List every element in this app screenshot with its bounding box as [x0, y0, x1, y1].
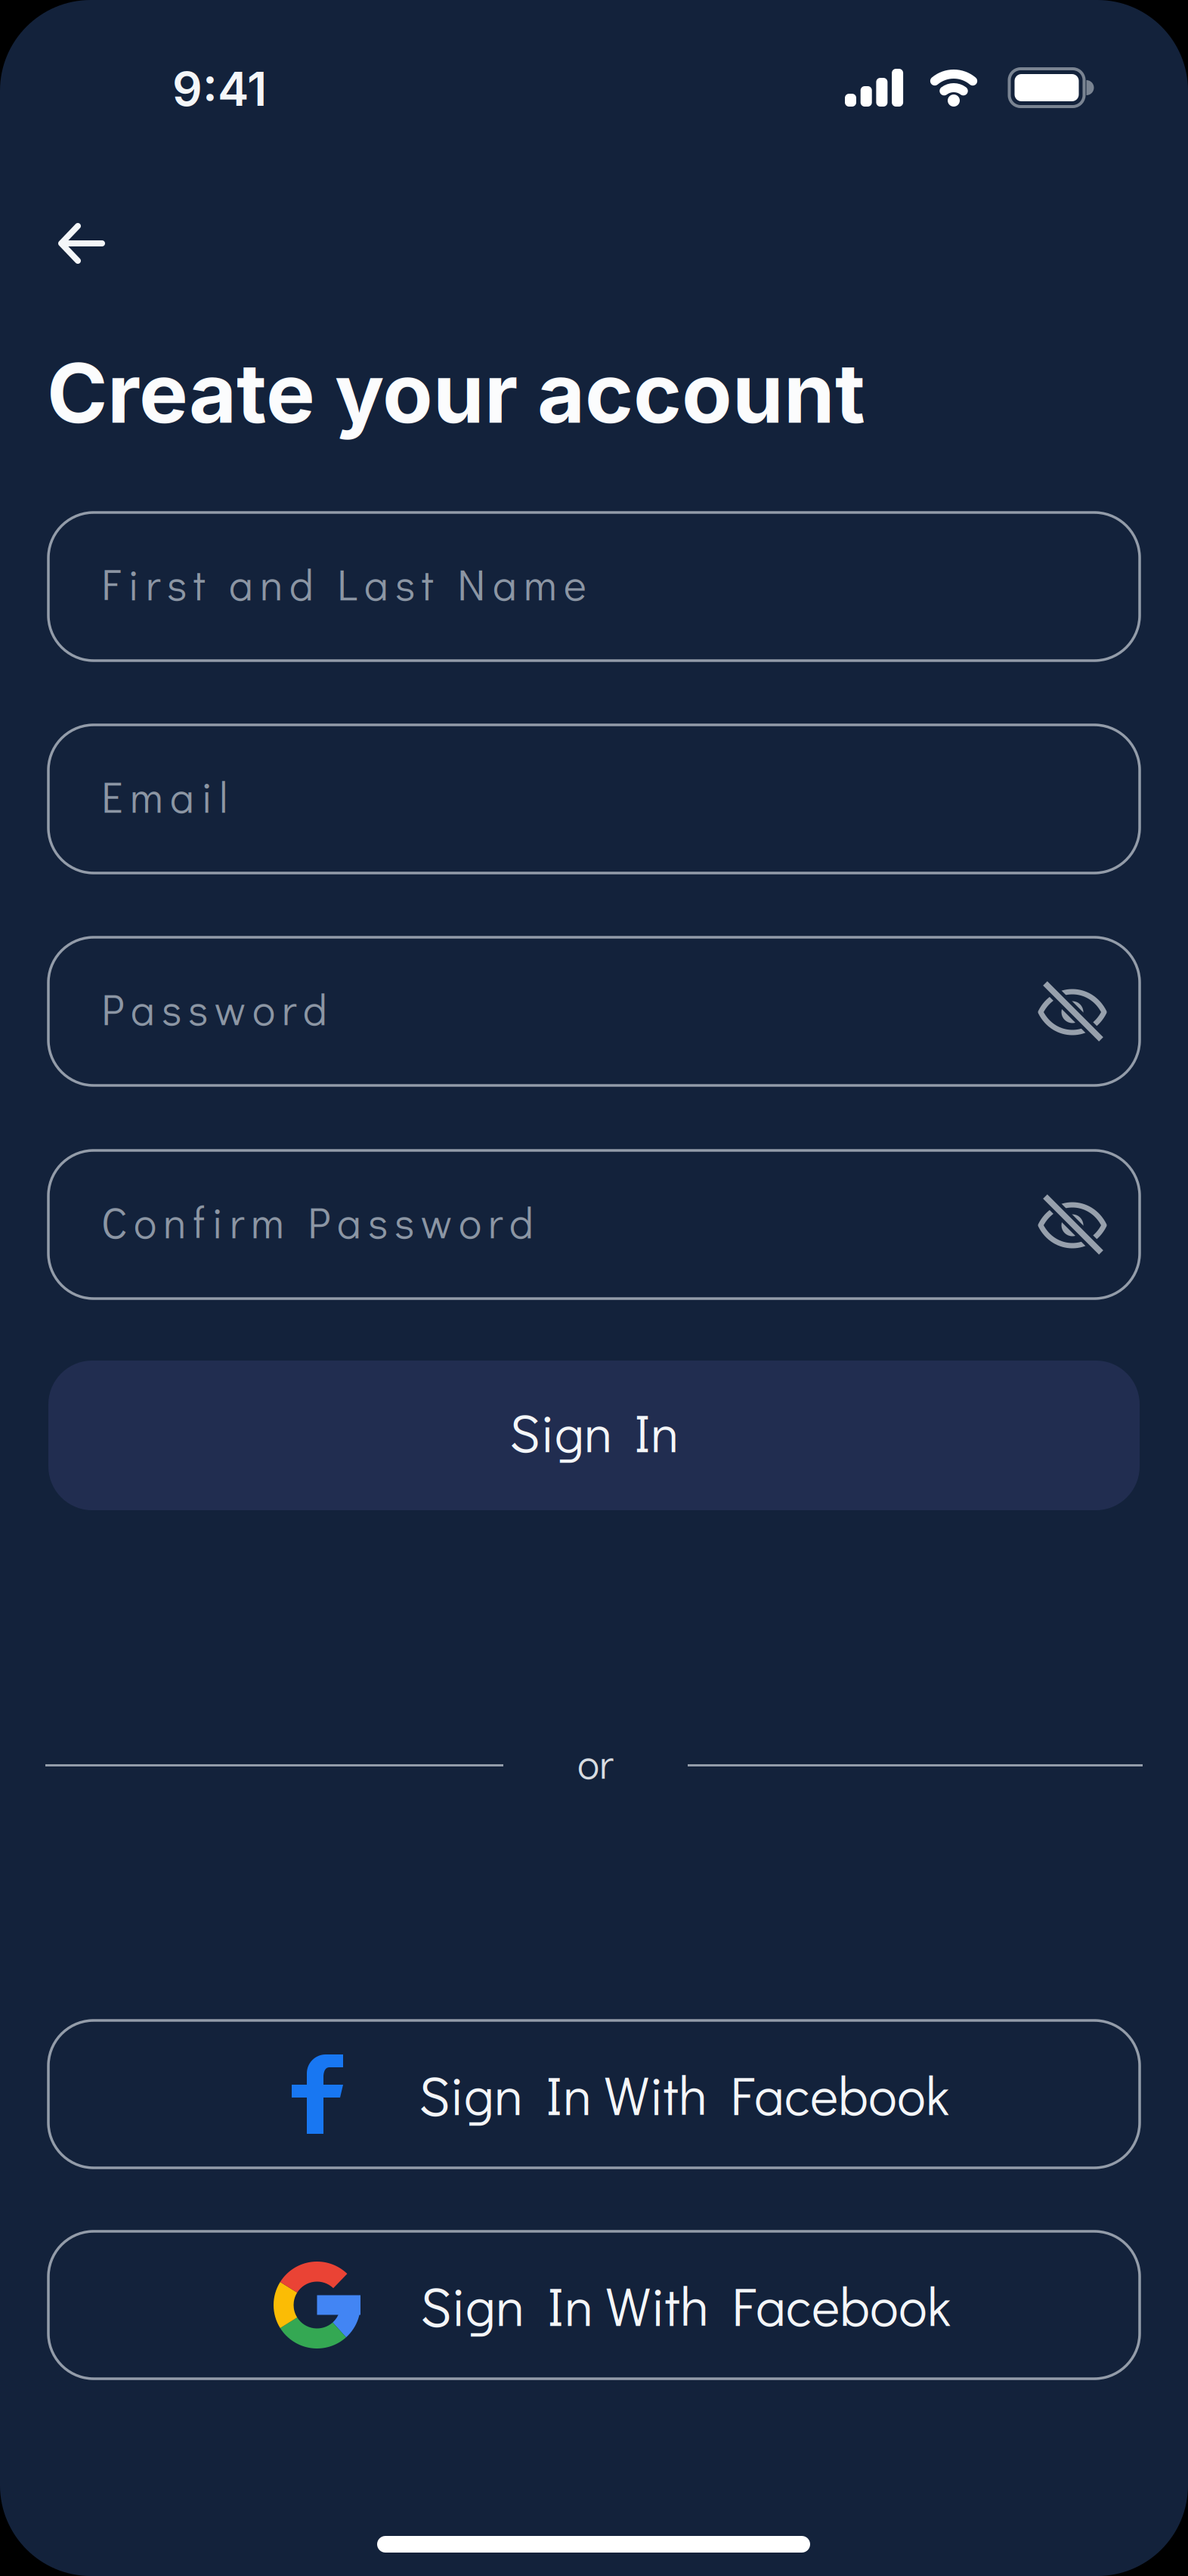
staticText: s	[188, 980, 208, 1036]
staticText: a	[170, 768, 194, 824]
staticText: a	[364, 555, 388, 612]
staticText: r	[282, 980, 296, 1036]
staticText: i	[201, 768, 212, 824]
staticText: m	[130, 768, 163, 824]
staticText: o	[252, 980, 275, 1036]
staticText: e	[564, 555, 586, 612]
staticText: Sign In	[509, 1397, 679, 1466]
staticText: s	[394, 1193, 414, 1250]
staticText: n	[260, 555, 283, 612]
staticText: C	[101, 1193, 127, 1250]
staticText: or	[577, 1735, 614, 1790]
staticText: d	[289, 555, 314, 612]
button[interactable]: C	[48, 1150, 1140, 1299]
staticText: a	[131, 980, 155, 1036]
staticText: s	[395, 555, 415, 612]
staticText: F	[101, 555, 121, 612]
staticText: 9:41	[172, 60, 267, 117]
staticText: r	[488, 1193, 503, 1250]
staticText: i	[212, 1193, 223, 1250]
staticText: a	[229, 555, 253, 612]
staticText: n	[163, 1193, 186, 1250]
button[interactable]: P	[48, 937, 1140, 1085]
staticText: s	[167, 555, 187, 612]
staticText: w	[421, 1193, 452, 1250]
staticText: o	[134, 1193, 156, 1250]
staticText: i	[128, 555, 139, 612]
staticText: Create your account	[47, 343, 865, 443]
staticText: l	[219, 768, 228, 824]
staticText: Sign In With Facebook	[419, 2059, 949, 2129]
staticText: m	[524, 555, 557, 612]
button[interactable]: Show Confirm Password	[1039, 1197, 1106, 1252]
button[interactable]: Back	[57, 222, 105, 265]
button[interactable]: Sign In With Facebook	[48, 2231, 1140, 2379]
button[interactable]: F	[48, 512, 1140, 661]
staticText: a	[493, 555, 517, 612]
staticText: E	[101, 768, 123, 824]
staticText: d	[509, 1193, 534, 1250]
staticText: t	[422, 555, 434, 612]
staticText: o	[459, 1193, 481, 1250]
button[interactable]: Sign In	[48, 1361, 1140, 1510]
staticText: d	[303, 980, 327, 1036]
button[interactable]: Sign In With Facebook	[48, 2020, 1140, 2168]
staticText: a	[337, 1193, 361, 1250]
staticText: s	[162, 980, 181, 1036]
staticText: P	[308, 1193, 330, 1250]
staticText: P	[101, 980, 124, 1036]
staticText: s	[368, 1193, 388, 1250]
button[interactable]: E	[48, 725, 1140, 873]
button[interactable]: Show Password	[1039, 983, 1106, 1039]
staticText: w	[215, 980, 246, 1036]
staticText: f	[193, 1193, 205, 1250]
staticText: N	[457, 555, 486, 612]
staticText: m	[251, 1193, 284, 1250]
staticText: r	[230, 1193, 244, 1250]
staticText: L	[337, 555, 357, 612]
staticText: Sign In With Facebook	[420, 2270, 951, 2340]
staticText: t	[193, 555, 206, 612]
staticText: r	[146, 555, 160, 612]
